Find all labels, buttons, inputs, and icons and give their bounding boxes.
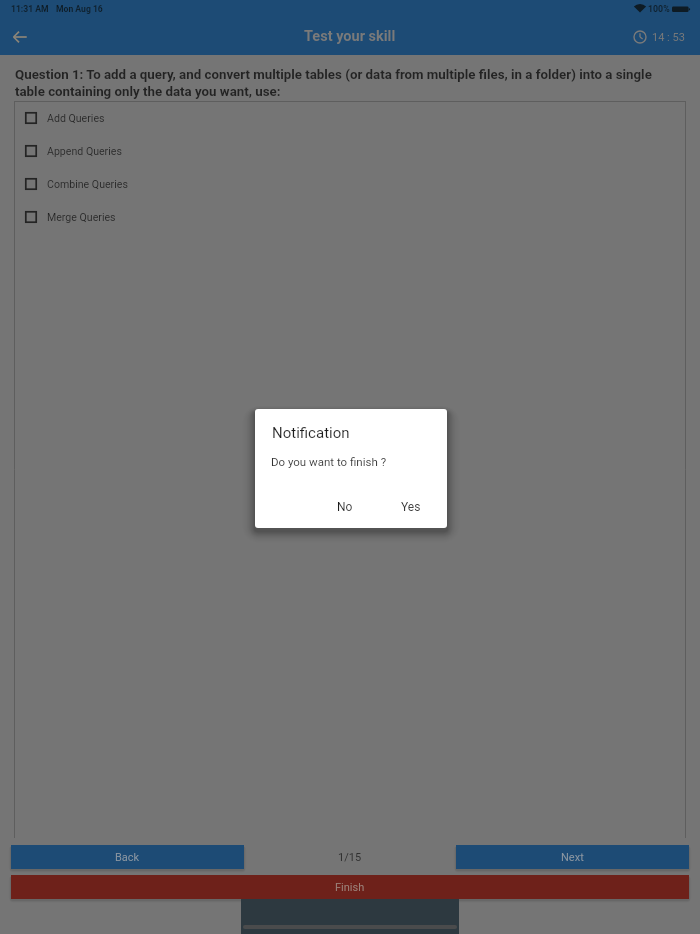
staticText: Yes <box>401 500 421 514</box>
staticText: 1/15 <box>338 851 362 864</box>
staticText: 14 : 53 <box>652 31 685 44</box>
button[interactable]: Next <box>456 845 689 869</box>
staticText: Add Queries <box>47 112 105 124</box>
button[interactable]: Combine Queries <box>14 167 686 200</box>
staticText: Question 1: To add a query, and convert … <box>15 67 663 99</box>
staticText: 11:31 AM <box>11 4 49 14</box>
staticText: Do you want to finish ? <box>271 455 387 468</box>
button[interactable]: Append Queries <box>14 134 686 167</box>
staticText: Finish <box>335 881 365 894</box>
staticText: No <box>337 500 353 514</box>
button[interactable]: No <box>326 495 364 519</box>
staticText: Mon Aug 16 <box>56 4 103 14</box>
staticText: Back <box>115 851 140 864</box>
button[interactable]: Back <box>11 845 244 869</box>
staticText: Append Queries <box>47 145 122 157</box>
staticText: Combine Queries <box>47 178 128 190</box>
button[interactable]: Yes <box>390 495 432 519</box>
staticText: Next <box>561 851 584 864</box>
staticText: Notification <box>272 424 350 442</box>
staticText: 100% <box>648 4 670 14</box>
button[interactable]: Finish <box>11 875 689 899</box>
button[interactable]: Back <box>5 22 34 51</box>
staticText: Test your skill <box>304 28 396 45</box>
button[interactable]: Add Queries <box>14 101 686 134</box>
staticText: Merge Queries <box>47 211 116 223</box>
button[interactable]: Merge Queries <box>14 200 686 233</box>
